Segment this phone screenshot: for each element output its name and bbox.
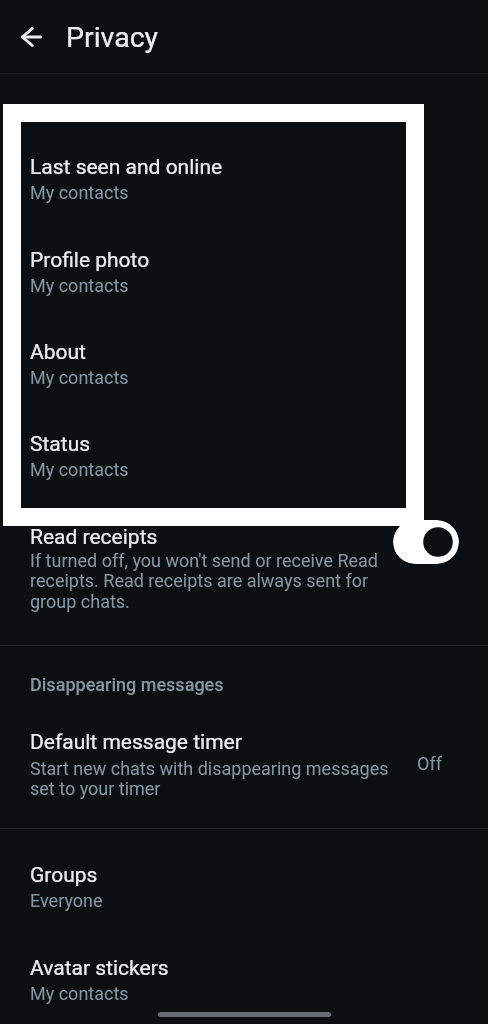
staticText: My contacts xyxy=(30,367,129,388)
button[interactable]: Status xyxy=(0,432,488,480)
staticText: Status xyxy=(30,432,91,457)
staticText: About xyxy=(30,340,86,365)
button[interactable]: Profile photo xyxy=(0,248,488,296)
staticText: If turned off, you won't send or receive… xyxy=(30,550,382,613)
staticText: Disappearing messages xyxy=(30,674,224,695)
staticText: My contacts xyxy=(30,983,129,1004)
staticText: Read receipts xyxy=(30,525,158,550)
staticText: Privacy xyxy=(66,21,159,54)
staticText: My contacts xyxy=(30,275,129,296)
button[interactable]: Back xyxy=(7,13,55,61)
staticText: My contacts xyxy=(30,182,129,203)
staticText: Start new chats with disappearing messag… xyxy=(30,758,395,800)
staticText: Off xyxy=(417,753,442,774)
staticText: Everyone xyxy=(30,890,103,911)
button[interactable]: Default message timer xyxy=(0,730,488,800)
button[interactable]: Avatar stickers xyxy=(0,956,488,1004)
button[interactable]: Read receipts xyxy=(0,525,488,613)
staticText: Default message timer xyxy=(30,730,242,755)
button[interactable]: Read receipts toggle xyxy=(393,520,459,564)
staticText: My contacts xyxy=(30,459,129,480)
button[interactable]: Groups xyxy=(0,863,488,911)
staticText: Last seen and online xyxy=(30,155,223,180)
staticText: Avatar stickers xyxy=(30,956,169,981)
button[interactable]: Last seen and online xyxy=(0,155,488,203)
staticText: Profile photo xyxy=(30,248,150,273)
button[interactable]: About xyxy=(0,340,488,388)
staticText: Groups xyxy=(30,863,98,888)
